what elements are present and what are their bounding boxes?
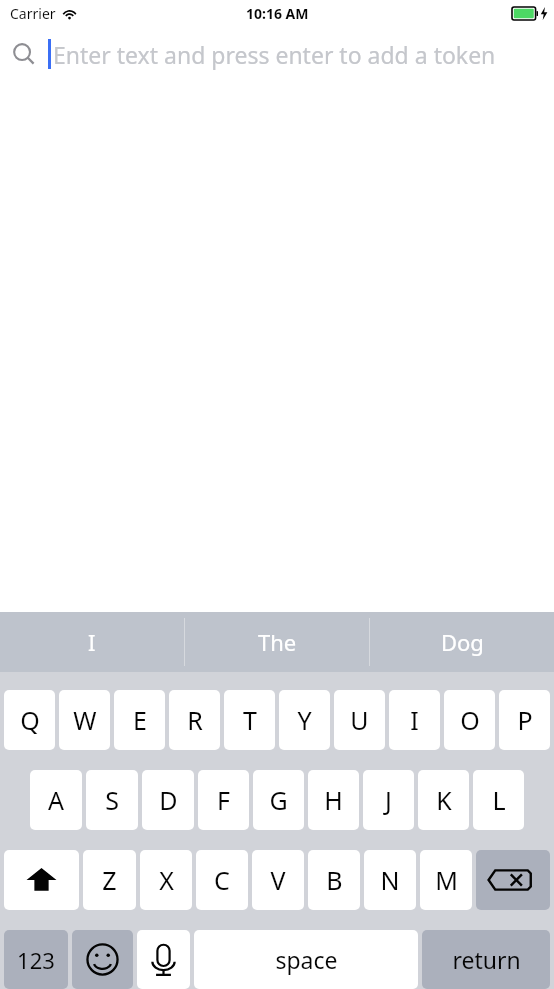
staticText: C [214,863,230,897]
button[interactable]: I [389,690,440,750]
button[interactable]: H [308,770,359,830]
button[interactable]: P [499,690,550,750]
staticText: 123 [17,945,55,975]
staticText: space [275,944,338,975]
button[interactable]: V [252,850,304,910]
staticText: K [436,783,452,817]
staticText: N [380,863,400,897]
button[interactable]: B [308,850,360,910]
button[interactable]: M [420,850,472,910]
staticText: B [326,863,343,897]
staticText: D [159,783,178,817]
staticText: Dog [441,627,484,657]
button[interactable]: space [194,930,418,989]
staticText: V [270,863,286,897]
staticText: F [217,783,230,817]
staticText: Carrier [10,4,56,23]
staticText: Z [102,863,117,897]
staticText: W [73,703,97,737]
button[interactable]: Dog [370,612,554,672]
staticText: 10:16 AM [246,4,309,23]
staticText: O [460,703,480,737]
staticText: X [159,863,174,897]
button[interactable]: U [334,690,385,750]
button[interactable]: E [114,690,165,750]
button[interactable]: Enter text and press enter to add a toke… [0,26,554,82]
staticText: Y [297,703,312,737]
button[interactable]: S [86,770,138,830]
staticText: S [105,783,119,817]
staticText: I [410,703,419,737]
staticText: J [385,783,392,817]
button[interactable]: Q [4,690,55,750]
button[interactable]: return [422,930,550,989]
button[interactable]: C [196,850,248,910]
button[interactable]: The [185,612,369,672]
staticText: I [88,627,96,657]
button[interactable]: Dictate [137,930,190,989]
staticText: G [269,783,288,817]
button[interactable]: Shift [4,850,79,910]
button[interactable]: T [224,690,275,750]
button[interactable]: Emoji [72,930,133,989]
button[interactable]: I [0,612,184,672]
button[interactable]: Y [279,690,330,750]
button[interactable]: X [140,850,192,910]
staticText: U [350,703,369,737]
button[interactable]: R [169,690,220,750]
staticText: P [517,703,533,737]
staticText: A [48,783,64,817]
staticText: Q [20,703,40,737]
button[interactable]: Z [83,850,136,910]
staticText: The [258,627,297,657]
button[interactable]: K [418,770,469,830]
staticText: H [324,783,343,817]
staticText: L [492,783,506,817]
button[interactable]: D [142,770,194,830]
button[interactable]: L [473,770,524,830]
staticText: return [452,944,521,975]
button[interactable]: G [253,770,304,830]
button[interactable]: F [198,770,249,830]
button[interactable]: J [363,770,414,830]
staticText: E [133,703,147,737]
button[interactable]: 123 [4,930,68,989]
button[interactable]: A [30,770,82,830]
button[interactable]: Backspace [476,850,550,910]
staticText: T [243,703,257,737]
staticText: R [187,703,203,737]
staticText: M [435,863,458,897]
staticText: Enter text and press enter to add a toke… [53,39,496,70]
button[interactable]: O [444,690,495,750]
button[interactable]: N [364,850,416,910]
button[interactable]: W [59,690,110,750]
